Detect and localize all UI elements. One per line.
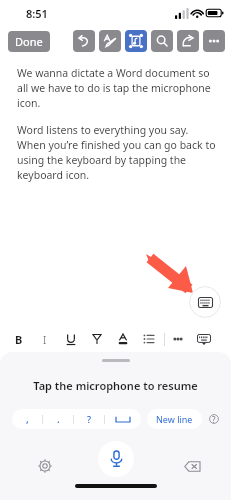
staticText: Word listens to everything you say. When…	[17, 123, 219, 182]
button[interactable]: Draw	[99, 30, 121, 52]
button[interactable]: Italic	[32, 326, 58, 352]
button[interactable]: Search	[151, 30, 173, 52]
button[interactable]: .	[43, 409, 73, 429]
staticText: ?	[87, 413, 92, 425]
staticText: ,	[26, 412, 29, 426]
staticText: B	[15, 332, 23, 347]
button[interactable]: ?	[74, 409, 104, 429]
button[interactable]: ,	[12, 409, 42, 429]
staticText: .	[57, 412, 60, 426]
staticText: I	[43, 332, 47, 347]
button[interactable]: Help	[209, 411, 219, 427]
staticText: Done	[15, 34, 43, 49]
staticText: 8:51	[26, 6, 48, 21]
button[interactable]: Bullet list	[136, 326, 162, 352]
button[interactable]: Bold	[6, 326, 32, 352]
staticText: ?	[212, 414, 216, 425]
button[interactable]: Font color	[110, 326, 136, 352]
staticText: Tap the microphone to resume	[0, 378, 231, 393]
button[interactable]: Select object	[125, 30, 147, 52]
button[interactable]: Highlight	[84, 326, 110, 352]
button[interactable]: More options	[203, 30, 225, 52]
button[interactable]: New line	[147, 409, 202, 429]
button[interactable]: Settings	[34, 455, 56, 477]
button[interactable]: Show keyboard	[189, 286, 221, 318]
button[interactable]: Backspace	[181, 455, 203, 477]
staticText: We wanna dictate a Word document so all …	[17, 66, 219, 110]
button[interactable]: Share	[177, 30, 199, 52]
staticText: New line	[156, 413, 193, 425]
button[interactable]: Microphone	[98, 441, 134, 477]
button[interactable]: Hide keyboard	[193, 328, 215, 350]
button[interactable]: Underline	[58, 326, 84, 352]
button[interactable]: Undo	[73, 30, 95, 52]
button[interactable]: Done	[8, 31, 50, 52]
button[interactable]: Space	[105, 409, 141, 429]
button[interactable]: More formatting	[165, 326, 191, 352]
